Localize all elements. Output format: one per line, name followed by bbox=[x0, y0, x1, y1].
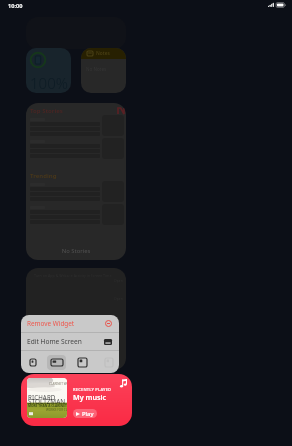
staticText: Trending bbox=[30, 172, 57, 180]
staticText: 100% bbox=[30, 73, 68, 93]
button[interactable]: Large widget bbox=[73, 355, 92, 370]
staticText: Notes bbox=[96, 50, 110, 57]
button[interactable]: 100% bbox=[26, 48, 71, 93]
staticText: No Stories bbox=[26, 247, 126, 255]
staticText: My music bbox=[73, 392, 107, 402]
staticText: Top Stories bbox=[30, 107, 63, 115]
staticText: Edit Home Screen bbox=[27, 337, 82, 346]
staticText: Play bbox=[82, 410, 94, 418]
button[interactable]: Turn on App & Website Activity in Screen… bbox=[26, 268, 126, 370]
button[interactable]: Play bbox=[73, 409, 97, 418]
button[interactable]: Small widget bbox=[23, 355, 42, 370]
button[interactable]: RICHARD bbox=[21, 374, 132, 426]
button[interactable]: Top Stories bbox=[26, 103, 126, 260]
staticText: STOLTZMAN bbox=[28, 397, 66, 406]
button[interactable]: Edit Home Screen bbox=[21, 333, 119, 350]
button[interactable]: Extra large widget bbox=[99, 355, 118, 370]
button[interactable]: Medium widget bbox=[47, 355, 66, 370]
staticText: WORKS FOR CLARINET bbox=[46, 408, 67, 412]
staticText: CLARINET WORKS bbox=[49, 382, 67, 386]
staticText: Remove Widget bbox=[27, 319, 75, 328]
staticText: RICHARD bbox=[28, 393, 56, 401]
staticText: RECENTLY PLAYED bbox=[73, 387, 112, 392]
staticText: MORE THAN A CLARINET bbox=[28, 404, 67, 408]
button[interactable]: Remove Widget bbox=[21, 315, 119, 332]
button[interactable]: Notes bbox=[81, 48, 126, 93]
staticText: 10:00 bbox=[8, 2, 23, 10]
